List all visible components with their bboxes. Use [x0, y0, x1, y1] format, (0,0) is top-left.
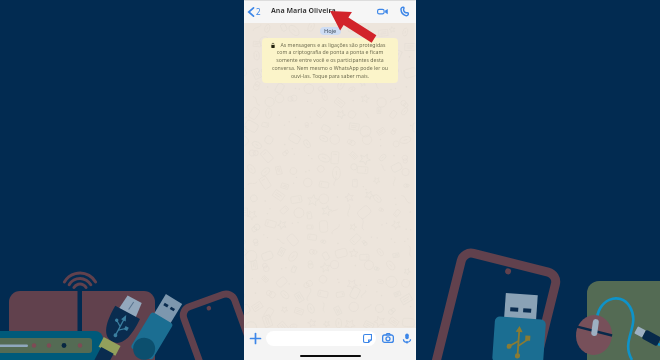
- button[interactable]: Video call: [374, 4, 391, 19]
- staticText: As mensagens e as ligações são protegida…: [269, 41, 391, 80]
- staticText: 2: [256, 6, 261, 17]
- button[interactable]: Camera: [380, 331, 396, 345]
- staticText: Hoje: [324, 27, 337, 35]
- button[interactable]: Voice call: [397, 4, 412, 19]
- other: Stickers: [363, 334, 372, 343]
- button[interactable]: As mensagens e as ligações são protegida…: [262, 38, 398, 83]
- staticText: Ana Maria Oliveira: [271, 6, 336, 16]
- button[interactable]: Hoje: [320, 27, 341, 35]
- button[interactable]: Attach: [247, 330, 264, 347]
- button[interactable]: Back, 2 unread: [244, 3, 265, 20]
- button[interactable]: Stickers: [266, 331, 376, 346]
- button[interactable]: Voice message: [401, 331, 413, 346]
